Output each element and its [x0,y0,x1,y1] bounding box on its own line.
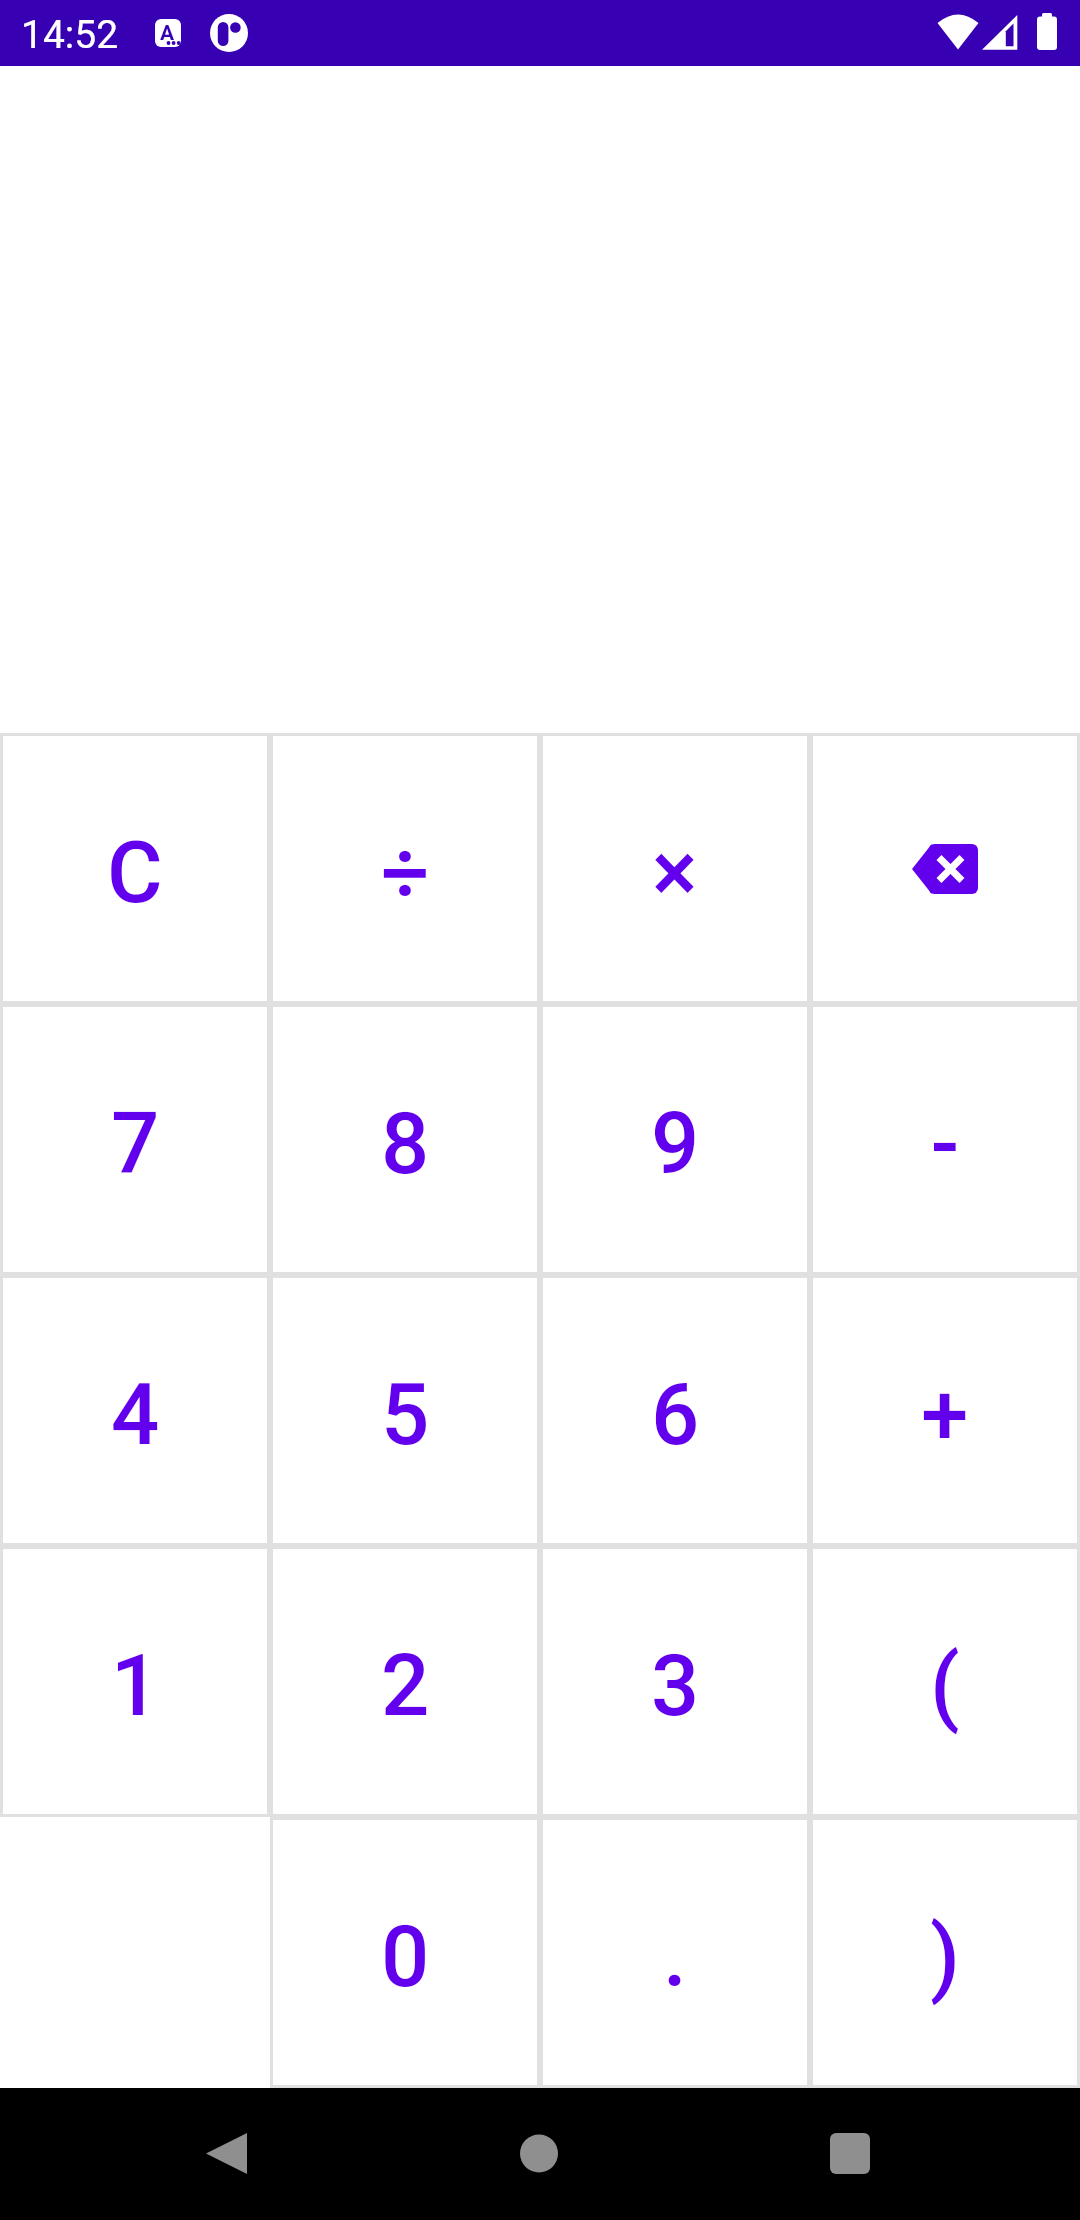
staticText: - [931,1094,959,1194]
staticText: 14:52 [21,12,119,58]
staticText: 9 [651,1094,700,1194]
button[interactable] [195,2122,259,2186]
button[interactable]: 3 [540,1546,810,1817]
button[interactable]: 0 [270,1817,540,2088]
staticText: 1 [111,1636,160,1736]
button[interactable]: 8 [270,1004,540,1275]
button[interactable]: C [0,733,270,1004]
button[interactable]: 1 [0,1546,270,1817]
button[interactable]: ÷ [270,733,540,1004]
staticText: 3 [651,1636,700,1736]
button[interactable]: ( [810,1546,1080,1817]
button[interactable]: 9 [540,1004,810,1275]
staticText: A [160,21,175,46]
button[interactable]: - [810,1004,1080,1275]
staticText: ( [930,1636,960,1736]
button[interactable]: 2 [270,1546,540,1817]
staticText: ÷ [381,823,430,923]
staticText: 6 [651,1365,700,1465]
staticText: × [652,823,698,923]
staticText: + [921,1365,969,1465]
button[interactable]: 4 [0,1275,270,1546]
button[interactable] [507,2122,571,2186]
button[interactable] [818,2122,882,2186]
staticText: 4 [111,1365,160,1465]
button[interactable]: 5 [270,1275,540,1546]
staticText: . [663,1907,687,2007]
button[interactable]: . [540,1817,810,2088]
staticText: C [107,823,163,923]
button[interactable] [810,733,1080,1004]
staticText: 0 [381,1907,430,2007]
button[interactable]: 6 [540,1275,810,1546]
button[interactable]: + [810,1275,1080,1546]
staticText: 7 [111,1094,160,1194]
staticText: 8 [381,1094,430,1194]
button[interactable]: ) [810,1817,1080,2088]
staticText: 5 [381,1365,430,1465]
staticText: 2 [381,1636,430,1736]
button[interactable]: 7 [0,1004,270,1275]
button[interactable]: × [540,733,810,1004]
staticText: ) [930,1907,961,2007]
